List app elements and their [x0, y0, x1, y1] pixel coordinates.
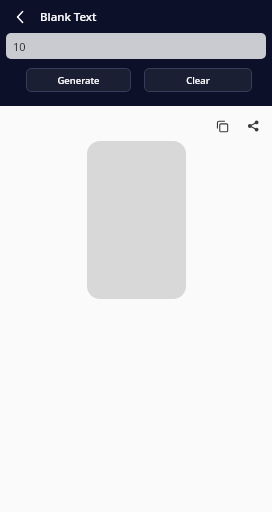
button[interactable]: Copy — [208, 112, 236, 140]
staticText: 10 — [13, 39, 26, 54]
staticText: Clear — [186, 74, 210, 87]
button[interactable]: Clear — [144, 68, 252, 92]
button[interactable]: 10 — [6, 33, 266, 59]
button[interactable]: Generate — [26, 68, 131, 92]
staticText: Generate — [57, 74, 100, 87]
button[interactable]: Back — [6, 3, 34, 31]
staticText: Blank Text — [40, 9, 97, 25]
button[interactable]: Share — [239, 112, 267, 140]
